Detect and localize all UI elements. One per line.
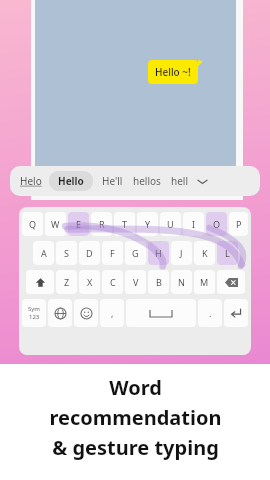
staticText: Y — [145, 218, 151, 230]
staticText: G — [132, 247, 139, 259]
button[interactable]: E — [68, 212, 89, 236]
staticText: W — [51, 218, 60, 230]
button[interactable]: Enter — [224, 299, 248, 327]
button[interactable]: Expand suggestions — [195, 174, 209, 188]
staticText: A — [41, 247, 47, 259]
staticText: Hello — [58, 174, 84, 188]
button[interactable]: P — [229, 212, 248, 236]
button[interactable]: C — [102, 270, 123, 294]
staticText: & gesture typing — [52, 434, 219, 461]
staticText: Word — [109, 374, 162, 401]
button[interactable]: Symbols — [22, 299, 46, 327]
button[interactable]: N — [171, 270, 192, 294]
button[interactable]: Hello ~! — [155, 65, 191, 79]
button[interactable]: D — [79, 241, 100, 265]
button[interactable]: . — [198, 299, 222, 327]
button[interactable]: Shift — [26, 270, 54, 294]
staticText: J — [180, 247, 183, 259]
staticText: D — [86, 247, 93, 259]
staticText: 123 — [29, 313, 40, 321]
button[interactable]: M — [194, 270, 215, 294]
button[interactable]: Hello — [58, 174, 84, 188]
button[interactable]: Z — [56, 270, 77, 294]
button[interactable]: He'll — [102, 174, 123, 188]
button[interactable]: U — [160, 212, 181, 236]
button[interactable]: L — [217, 241, 238, 265]
button[interactable]: V — [125, 270, 146, 294]
button[interactable]: R — [91, 212, 112, 236]
staticText: S — [64, 247, 69, 259]
staticText: L — [225, 247, 230, 259]
staticText: F — [110, 247, 115, 259]
staticText: K — [202, 247, 208, 259]
button[interactable]: Emoji — [74, 299, 98, 327]
button[interactable]: T — [114, 212, 135, 236]
staticText: P — [236, 218, 242, 230]
staticText: Z — [64, 276, 70, 288]
button[interactable]: Y — [137, 212, 158, 236]
staticText: H — [155, 247, 162, 259]
staticText: O — [213, 218, 221, 230]
staticText: M — [200, 276, 209, 288]
staticText: E — [76, 218, 82, 230]
button[interactable]: Backspace — [217, 270, 245, 294]
button[interactable]: Space — [126, 299, 196, 327]
staticText: , — [111, 307, 114, 319]
staticText: recommendation — [49, 404, 222, 431]
button[interactable]: S — [56, 241, 77, 265]
staticText: U — [167, 218, 174, 230]
button[interactable]: K — [194, 241, 215, 265]
button[interactable]: hellos — [133, 174, 161, 188]
staticText: T — [122, 218, 128, 230]
staticText: N — [178, 276, 185, 288]
button[interactable]: Helo — [20, 174, 42, 188]
button[interactable]: A — [33, 241, 54, 265]
staticText: X — [87, 276, 93, 288]
staticText: R — [99, 218, 105, 230]
staticText: . — [209, 307, 212, 319]
staticText: C — [110, 276, 116, 288]
staticText: I — [192, 218, 196, 230]
staticText: Sym — [28, 305, 40, 313]
button[interactable]: I — [183, 212, 204, 236]
staticText: B — [156, 276, 162, 288]
button[interactable]: W — [45, 212, 66, 236]
button[interactable]: X — [79, 270, 100, 294]
button[interactable]: Change language — [48, 299, 72, 327]
button[interactable]: , — [100, 299, 124, 327]
button[interactable]: B — [148, 270, 169, 294]
staticText: Q — [29, 218, 37, 230]
staticText: V — [133, 276, 139, 288]
staticText: Hello ~! — [155, 65, 191, 79]
button[interactable]: hell — [171, 174, 188, 188]
button[interactable]: H — [148, 241, 169, 265]
button[interactable]: F — [102, 241, 123, 265]
button[interactable]: G — [125, 241, 146, 265]
button[interactable]: O — [206, 212, 227, 236]
button[interactable]: Q — [22, 212, 43, 236]
button[interactable]: J — [171, 241, 192, 265]
